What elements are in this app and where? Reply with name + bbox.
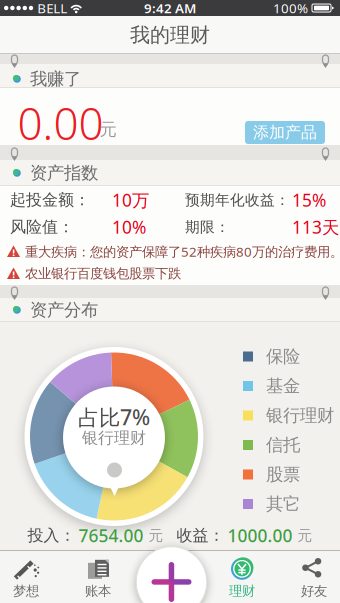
button[interactable]: 添加产品 — [245, 121, 325, 144]
staticText: 10% — [112, 215, 146, 238]
staticText: 1000.00 — [227, 524, 292, 547]
staticText: 预期年化收益： — [185, 191, 290, 209]
button[interactable]: 账本 — [85, 557, 111, 599]
staticText: 元 — [148, 526, 163, 544]
staticText: 7654.00 — [78, 524, 143, 547]
staticText: 15% — [292, 188, 326, 211]
staticText: 投入： — [27, 526, 75, 545]
staticText: 风险值： — [10, 217, 74, 237]
staticText: 添加产品 — [253, 123, 317, 142]
staticText: 信托 — [266, 434, 300, 456]
staticText: 起投金额： — [10, 190, 90, 210]
staticText: 10万 — [112, 188, 149, 211]
staticText: 理财 — [229, 583, 255, 599]
staticText: 梦想 — [13, 583, 39, 599]
staticText: 好友 — [301, 583, 327, 599]
staticText: 资产分布 — [30, 299, 98, 321]
button[interactable]: 好友 — [301, 557, 327, 599]
staticText: 资产指数 — [30, 162, 98, 184]
staticText: 重大疾病：您的资产保障了52种疾病80万的治疗费用。 — [25, 243, 340, 260]
staticText: 银行理财 — [82, 428, 146, 448]
staticText: 股票 — [266, 464, 300, 485]
staticText: 其它 — [266, 493, 300, 515]
staticText: 元 — [297, 526, 312, 544]
staticText: 113天 — [292, 215, 339, 238]
staticText: 9:42 AM — [144, 0, 196, 17]
staticText: 期限： — [185, 218, 230, 236]
staticText: 0.00 — [17, 94, 103, 152]
staticText: 账本 — [85, 583, 111, 599]
staticText: 银行理财 — [266, 405, 334, 426]
staticText: 我赚了 — [30, 68, 81, 90]
staticText: 农业银行百度钱包股票下跌 — [25, 265, 181, 282]
staticText: 收益： — [176, 526, 224, 545]
staticText: 保险 — [266, 346, 300, 367]
button[interactable]: 梦想 — [13, 557, 39, 599]
staticText: 我的理财 — [130, 23, 210, 47]
button[interactable]: 添加 — [136, 546, 207, 603]
staticText: 100% — [273, 0, 308, 17]
button[interactable]: 理财 — [229, 557, 255, 599]
staticText: 元 — [99, 119, 116, 140]
staticText: 占比7% — [78, 403, 150, 431]
staticText: 基金 — [266, 375, 300, 397]
staticText: BELL — [37, 0, 67, 17]
